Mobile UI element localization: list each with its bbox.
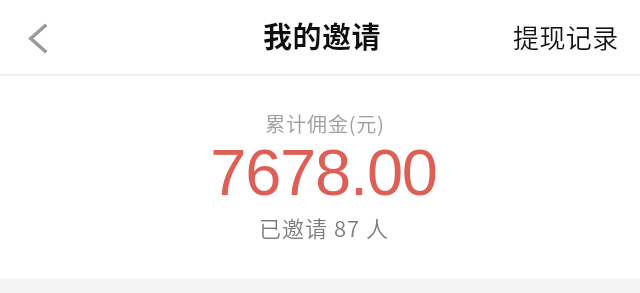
staticText: 提现记录 <box>513 18 619 56</box>
staticText: 7678.00 <box>210 136 437 209</box>
staticText: 我的邀请 <box>263 14 382 56</box>
button[interactable]: 提现记录 <box>497 9 640 67</box>
staticText: 累计佣金(元) <box>265 109 385 138</box>
staticText: 已邀请 87 人 <box>259 211 389 243</box>
button[interactable]: Back <box>14 14 62 62</box>
